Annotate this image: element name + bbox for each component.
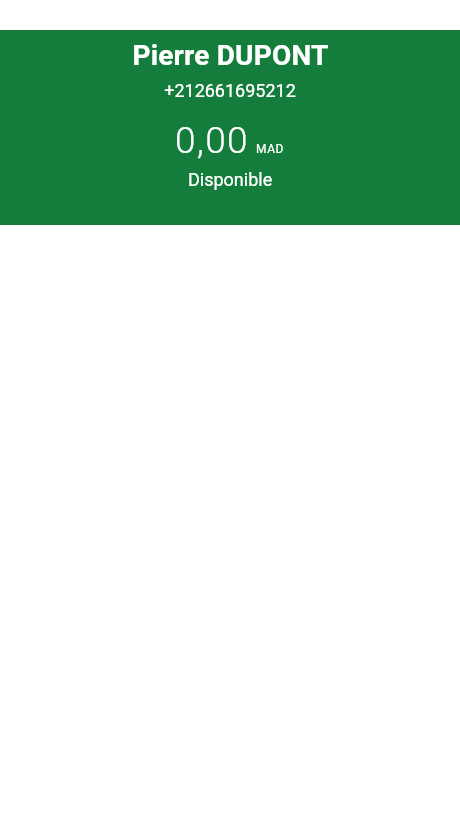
staticText: +212661695212 [164,80,296,101]
staticText: 0,00 [175,119,249,162]
button[interactable]: Pierre DUPONT [0,30,460,225]
staticText: MAD [256,142,285,156]
staticText: Disponible [188,169,273,190]
staticText: Pierre DUPONT [132,39,329,72]
